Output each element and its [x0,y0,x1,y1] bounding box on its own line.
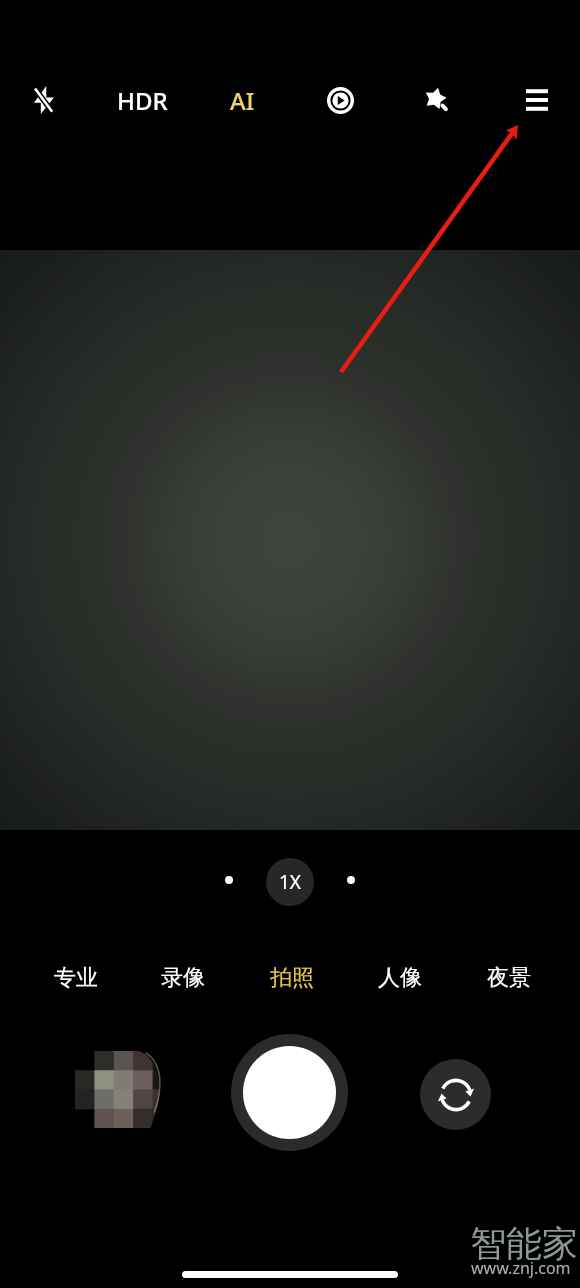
staticText: 夜景 [487,964,531,992]
button[interactable]: Switch camera [420,1059,491,1130]
button[interactable]: 人像 [365,954,435,1002]
button[interactable]: AI [214,72,270,128]
button[interactable]: Gallery [75,1051,163,1128]
button[interactable]: 专业 [41,954,111,1002]
staticText: www.znj.com [471,1257,571,1279]
button[interactable]: 拍照 [257,954,327,1002]
button[interactable]: Take photo [231,1034,348,1151]
button[interactable]: 1X [266,858,314,906]
button[interactable]: Menu [509,72,565,128]
staticText: AI [230,84,255,117]
button[interactable]: 录像 [148,954,218,1002]
button[interactable]: HDR [114,72,170,128]
staticText: 拍照 [270,964,314,992]
button[interactable]: Beautify [409,72,465,128]
staticText: 专业 [54,964,98,992]
staticText: 录像 [161,964,205,992]
staticText: 人像 [378,964,422,992]
staticText: HDR [117,84,168,117]
staticText: 1X [279,869,302,895]
button[interactable]: Flash off [16,72,72,128]
button[interactable]: Motion photo [312,72,368,128]
staticText: 智能家 [470,1221,578,1266]
button[interactable]: 夜景 [474,954,544,1002]
